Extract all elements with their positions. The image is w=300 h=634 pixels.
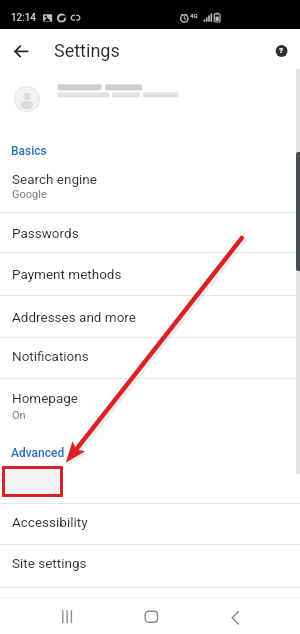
staticText: Accessibility xyxy=(12,514,88,530)
staticText: Google xyxy=(12,188,47,201)
staticText: On xyxy=(12,409,26,422)
button[interactable]: Passwords xyxy=(0,213,300,252)
staticText: Notifications xyxy=(12,348,89,364)
staticText: 4G xyxy=(190,12,198,19)
staticText: 12:14 xyxy=(11,12,36,24)
button[interactable]: Search engine xyxy=(0,166,300,212)
button[interactable]: Homepage xyxy=(0,379,300,426)
button[interactable]: Privacy xyxy=(0,466,300,503)
button[interactable]: Back xyxy=(212,598,258,634)
button[interactable]: Addresses and more xyxy=(0,296,300,337)
staticText: Passwords xyxy=(12,225,79,241)
button[interactable]: Recent apps xyxy=(45,598,91,634)
staticText: Site settings xyxy=(12,555,87,571)
staticText: Homepage xyxy=(12,390,78,406)
staticText: Addresses and more xyxy=(12,309,136,325)
button[interactable]: Navigate up xyxy=(4,34,39,69)
staticText: Settings xyxy=(54,40,120,61)
button[interactable] xyxy=(0,70,300,128)
staticText: ? xyxy=(279,46,283,55)
button[interactable]: Site settings xyxy=(0,545,300,587)
staticText: Search engine xyxy=(12,171,97,187)
staticText: Advanced xyxy=(11,446,65,460)
button[interactable]: Accessibility xyxy=(0,504,300,544)
button[interactable]: Home xyxy=(128,598,174,634)
staticText: Basics xyxy=(11,144,47,158)
button[interactable]: Notifications xyxy=(0,338,300,379)
button[interactable]: Help and feedback xyxy=(267,36,296,65)
button[interactable]: Payment methods xyxy=(0,253,300,295)
staticText: Payment methods xyxy=(12,266,122,282)
